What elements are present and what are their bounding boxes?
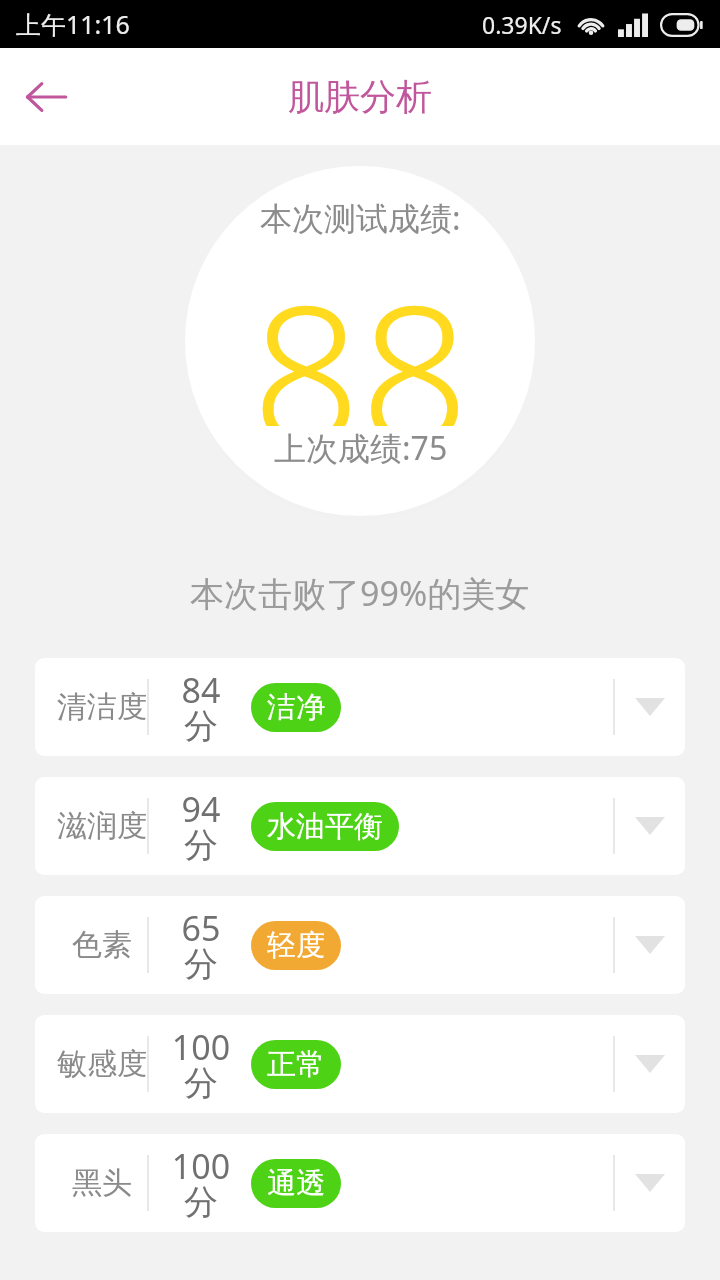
- button[interactable]: Expand: [615, 896, 685, 994]
- staticText: 正常: [267, 1046, 325, 1083]
- staticText: 肌肤分析: [288, 74, 432, 119]
- staticText: 上次成绩:75: [274, 426, 448, 470]
- staticText: 84分: [169, 667, 233, 748]
- staticText: 0.39K/s: [482, 9, 562, 40]
- button[interactable]: 黑头: [35, 1134, 685, 1232]
- button[interactable]: Back: [10, 61, 82, 133]
- staticText: 水油平衡: [267, 808, 383, 845]
- staticText: 100分: [169, 1143, 233, 1224]
- staticText: 色素: [72, 926, 132, 964]
- staticText: 清洁度: [57, 688, 147, 726]
- button[interactable]: 敏感度: [35, 1015, 685, 1113]
- staticText: 本次测试成绩:: [260, 196, 461, 240]
- staticText: 洁净: [267, 689, 325, 726]
- button[interactable]: Expand: [615, 1134, 685, 1232]
- staticText: 100分: [169, 1024, 233, 1105]
- staticText: 65分: [169, 905, 233, 986]
- staticText: 本次击败了99%的美女: [190, 570, 530, 616]
- staticText: 黑头: [72, 1164, 132, 1202]
- button[interactable]: Expand: [615, 658, 685, 756]
- staticText: 88: [252, 240, 469, 426]
- staticText: 滋润度: [57, 807, 147, 845]
- button[interactable]: 色素: [35, 896, 685, 994]
- staticText: 通透: [267, 1165, 325, 1202]
- button[interactable]: 滋润度: [35, 777, 685, 875]
- staticText: 上午11:16: [16, 7, 130, 41]
- button[interactable]: 清洁度: [35, 658, 685, 756]
- staticText: 轻度: [267, 927, 325, 964]
- button[interactable]: Expand: [615, 1015, 685, 1113]
- staticText: 94分: [169, 786, 233, 867]
- staticText: 敏感度: [57, 1045, 147, 1083]
- button[interactable]: Expand: [615, 777, 685, 875]
